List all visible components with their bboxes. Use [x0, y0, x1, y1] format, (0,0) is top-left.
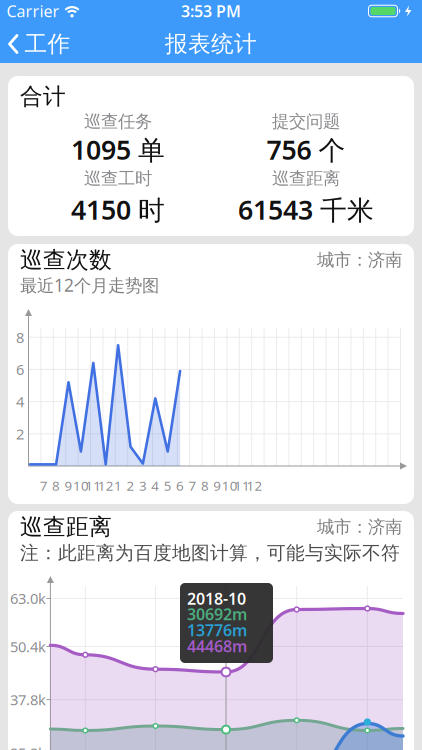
staticText: 25.2k: [10, 743, 46, 750]
staticText: 12: [246, 477, 262, 494]
staticText: 最近12个月走势图: [20, 273, 159, 296]
staticText: 756 个: [266, 132, 345, 167]
staticText: 7: [188, 477, 196, 494]
staticText: 1: [114, 477, 122, 494]
staticText: 巡查距离: [272, 168, 340, 189]
staticText: 9: [213, 477, 221, 494]
staticText: 2: [16, 424, 24, 444]
staticText: 6: [176, 477, 184, 494]
staticText: 4150 时: [71, 192, 165, 227]
staticText: 2018-10: [187, 588, 246, 609]
staticText: 提交问题: [272, 111, 340, 132]
staticText: 城市：济南: [317, 249, 402, 271]
staticText: 城市：济南: [317, 516, 402, 538]
staticText: Carrier: [6, 0, 59, 22]
staticText: 8: [201, 477, 209, 494]
staticText: 63.0k: [10, 589, 46, 608]
staticText: 4: [16, 392, 24, 411]
staticText: 10: [222, 477, 238, 494]
staticText: 12: [98, 477, 114, 494]
staticText: 9: [64, 477, 72, 494]
staticText: 巡查距离: [20, 513, 112, 541]
button[interactable]: 城市：济南: [317, 249, 402, 271]
button[interactable]: 工作: [7, 23, 70, 65]
button[interactable]: 城市：济南: [317, 516, 402, 538]
staticText: 2: [126, 477, 134, 494]
staticText: 13776m: [187, 619, 247, 641]
staticText: 11: [234, 477, 250, 494]
staticText: 巡查任务: [84, 111, 152, 132]
staticText: 8: [52, 477, 60, 494]
staticText: 37.8k: [10, 690, 46, 709]
staticText: 巡查次数: [20, 246, 112, 274]
staticText: 3: [139, 477, 147, 494]
staticText: 61543 千米: [238, 192, 374, 227]
staticText: 4: [151, 477, 159, 494]
staticText: 合计: [20, 83, 66, 110]
staticText: 10: [73, 477, 89, 494]
staticText: 7: [40, 477, 48, 494]
staticText: 44468m: [187, 635, 247, 657]
staticText: 50.4k: [10, 637, 46, 656]
staticText: 3:53 PM: [181, 0, 241, 22]
staticText: 1095 单: [71, 132, 165, 167]
staticText: 报表统计: [165, 30, 257, 58]
staticText: 11: [85, 477, 101, 494]
staticText: 注：此距离为百度地图计算，可能与实际不符: [20, 541, 400, 564]
staticText: 6: [16, 360, 24, 379]
staticText: 30692m: [187, 603, 247, 625]
staticText: 8: [16, 327, 24, 347]
staticText: 工作: [24, 30, 70, 58]
staticText: 巡查工时: [84, 168, 152, 189]
staticText: 5: [164, 477, 172, 494]
